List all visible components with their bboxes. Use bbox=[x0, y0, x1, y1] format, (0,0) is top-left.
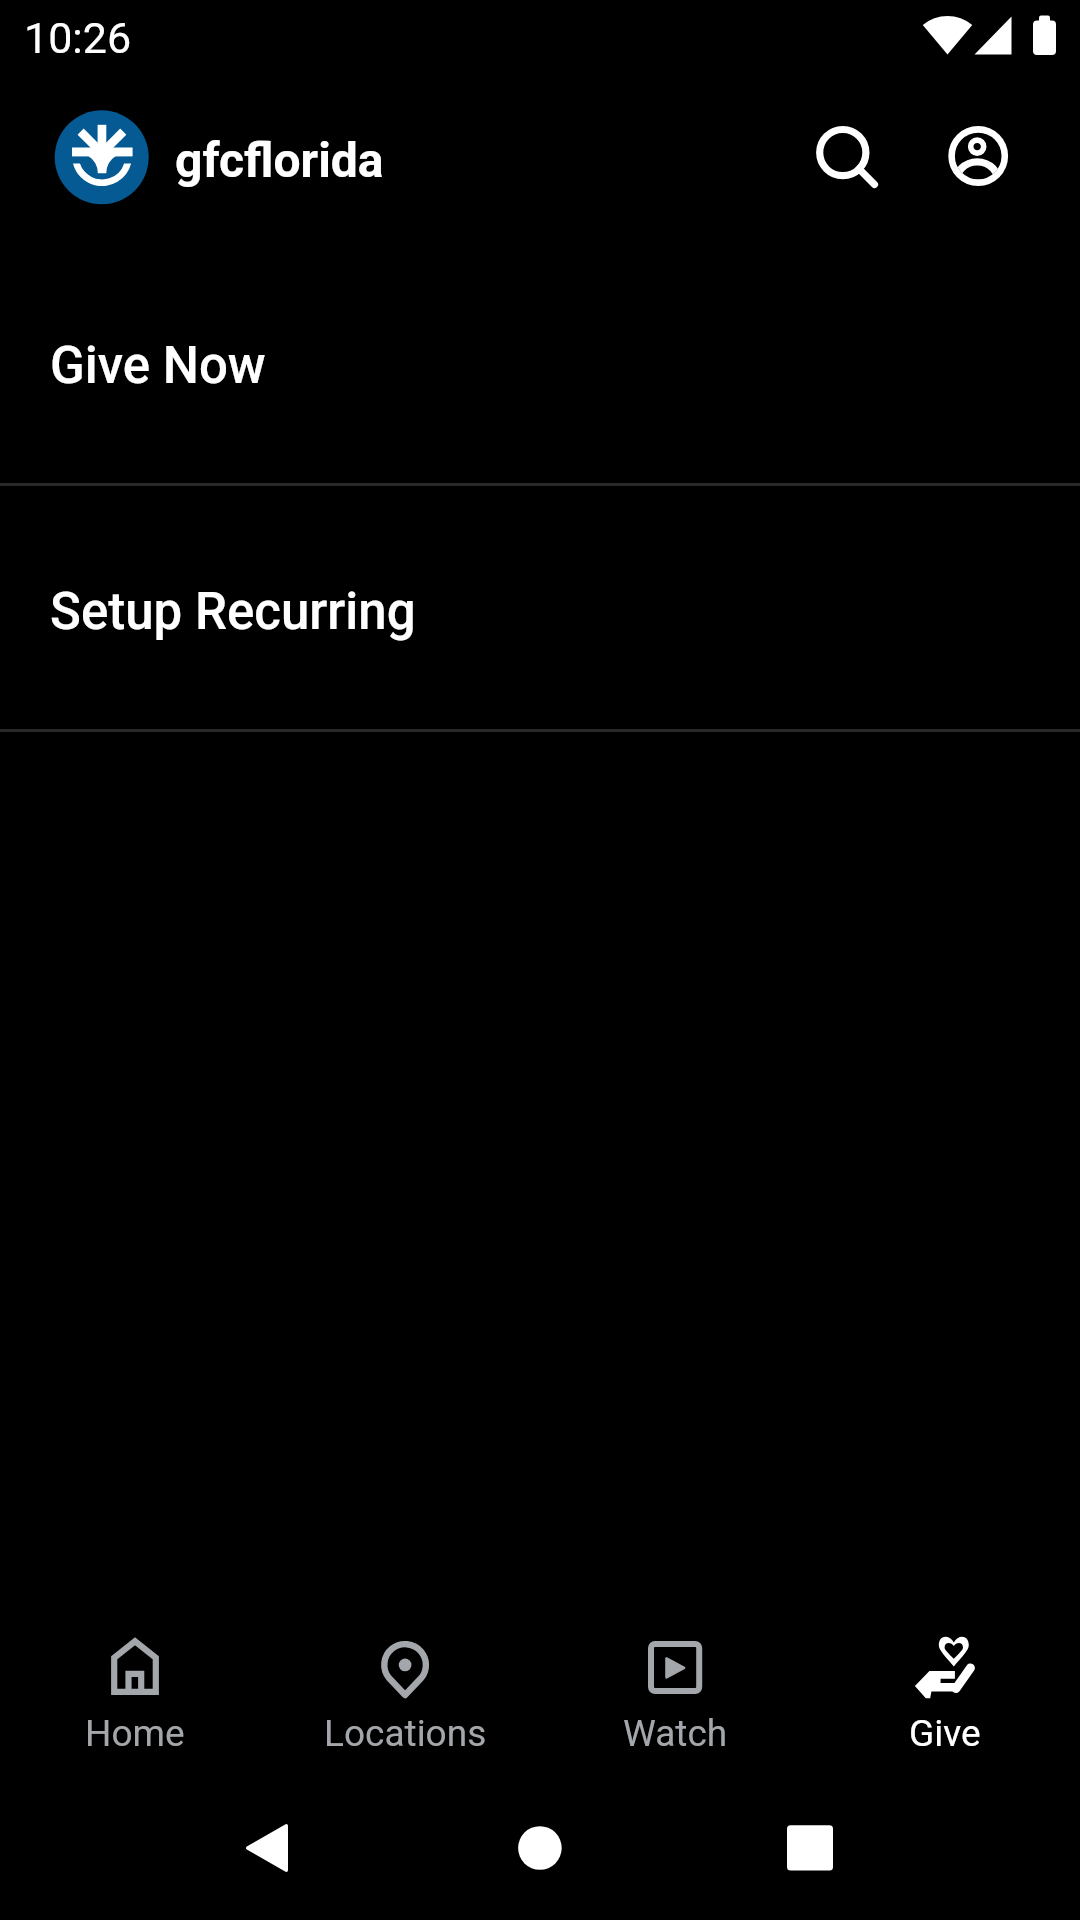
staticText: Give bbox=[909, 1712, 981, 1755]
button[interactable]: Give bbox=[810, 1590, 1080, 1780]
staticText: 10:26 bbox=[24, 13, 132, 63]
staticText: gfcflorida bbox=[175, 132, 384, 188]
staticText: Setup Recurring bbox=[50, 582, 416, 642]
button[interactable]: Watch bbox=[540, 1590, 810, 1780]
staticText: Home bbox=[85, 1712, 185, 1755]
staticText: Locations bbox=[324, 1712, 487, 1755]
staticText: Watch bbox=[623, 1712, 728, 1755]
button[interactable]: Setup Recurring bbox=[0, 486, 1080, 729]
button[interactable]: Home bbox=[0, 1590, 270, 1780]
button[interactable]: Account bbox=[918, 102, 1038, 222]
button[interactable]: Locations bbox=[270, 1590, 540, 1780]
button[interactable]: Give Now bbox=[0, 240, 1080, 483]
button[interactable]: Search bbox=[782, 102, 902, 222]
staticText: Give Now bbox=[50, 336, 266, 396]
